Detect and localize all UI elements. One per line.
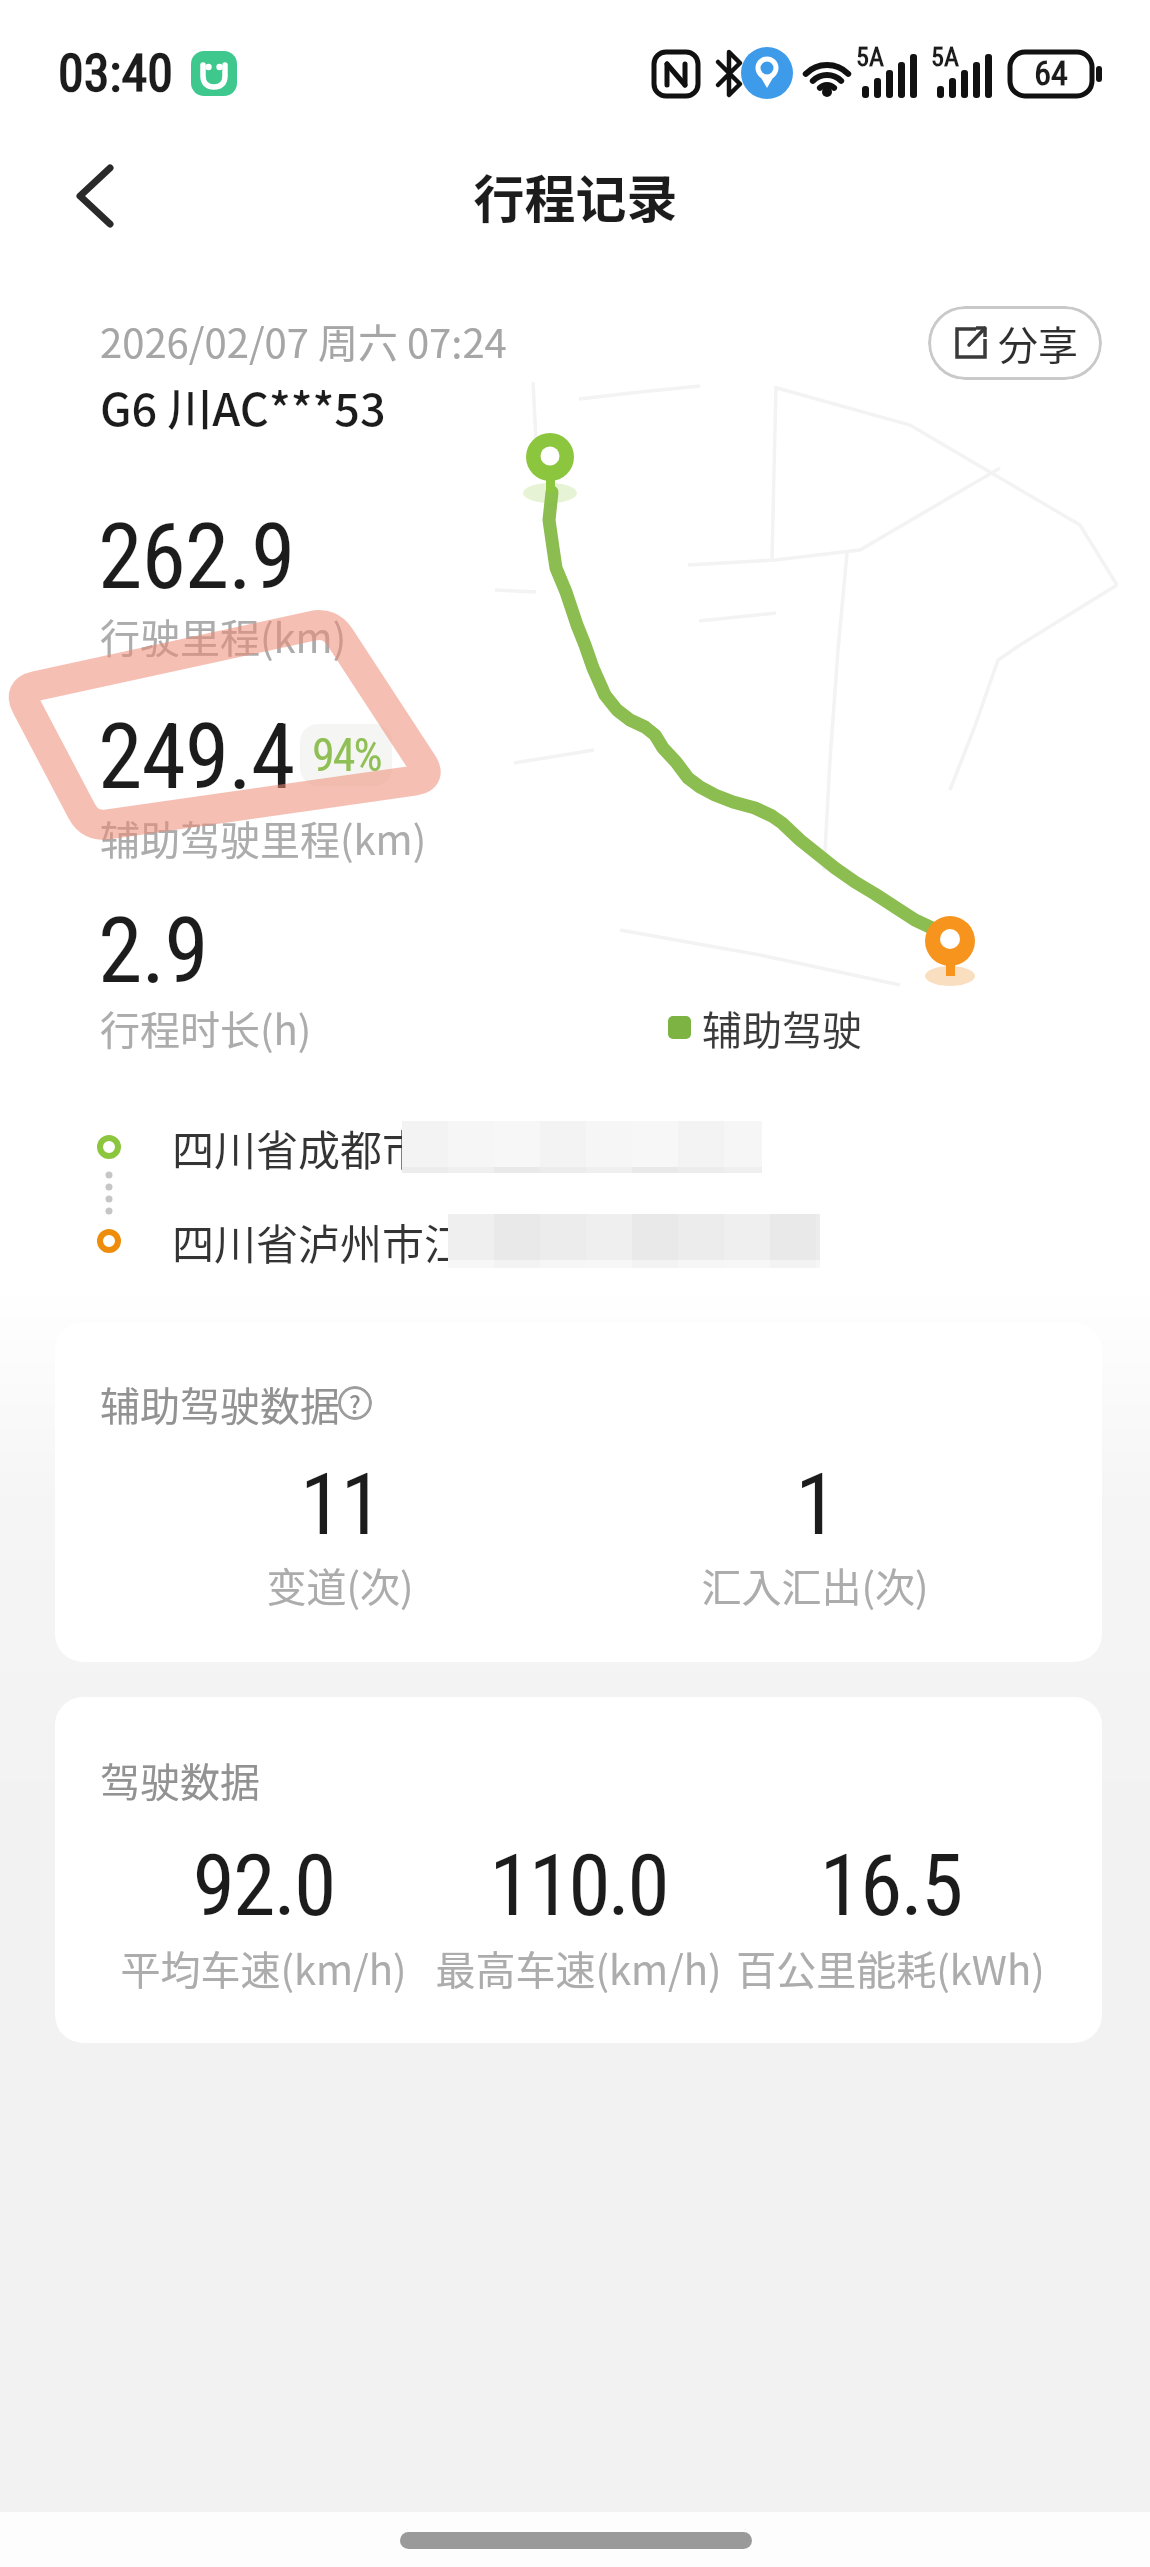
- staticText: 92.0: [192, 1835, 335, 1936]
- button[interactable]: [60, 160, 130, 232]
- staticText: 四川省泸州市江: [172, 1211, 467, 1272]
- staticText: 百公里能耗(kWh): [736, 1939, 1045, 1997]
- staticText: 110.0: [489, 1835, 667, 1936]
- staticText: 辅助驾驶里程(km): [100, 809, 427, 867]
- staticText: 249.4: [98, 705, 295, 810]
- staticText: 94%: [312, 728, 381, 782]
- staticText: 03:40: [58, 43, 173, 104]
- staticText: 2.9: [98, 899, 208, 1004]
- staticText: 行程时长(h): [100, 999, 312, 1057]
- staticText: G6 川AC***53: [100, 374, 386, 439]
- staticText: 5A: [856, 42, 884, 72]
- staticText: 行程记录: [473, 159, 678, 233]
- staticText: ?: [349, 1386, 361, 1420]
- button[interactable]: ?: [338, 1386, 372, 1420]
- staticText: 64: [1034, 53, 1068, 93]
- staticText: 变道(次): [266, 1556, 414, 1614]
- staticText: 驾驶数据: [100, 1751, 260, 1809]
- staticText: 汇入汇出(次): [701, 1556, 929, 1614]
- button[interactable]: 分享: [928, 306, 1102, 380]
- staticText: 平均车速(km/h): [120, 1939, 407, 1997]
- staticText: 辅助驾驶: [702, 999, 862, 1057]
- staticText: 262.9: [98, 505, 295, 610]
- button[interactable]: [400, 2532, 752, 2549]
- staticText: 16.5: [819, 1835, 962, 1936]
- staticText: 辅助驾驶数据: [100, 1375, 340, 1433]
- staticText: 2026/02/07 周六 07:24: [100, 312, 507, 370]
- staticText: 行驶里程(km): [100, 607, 347, 665]
- staticText: 分享: [998, 314, 1078, 372]
- staticText: 四川省成都市: [172, 1117, 425, 1178]
- staticText: 最高车速(km/h): [435, 1939, 722, 1997]
- staticText: 1: [795, 1454, 836, 1555]
- staticText: 11: [300, 1454, 381, 1555]
- staticText: 5A: [931, 42, 959, 72]
